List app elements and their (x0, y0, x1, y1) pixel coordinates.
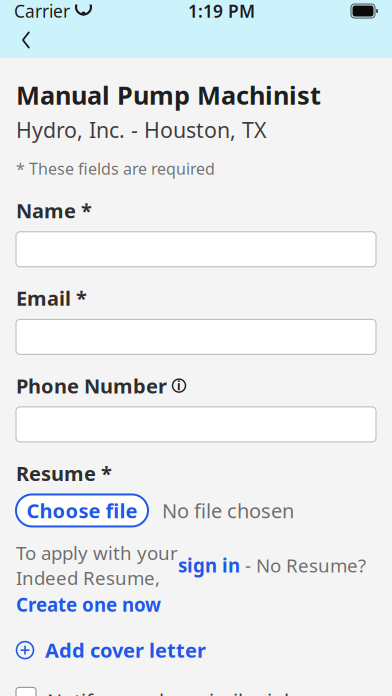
staticText: Create one now (16, 592, 161, 617)
staticText: Email * (16, 285, 87, 311)
staticText: Resume * (16, 460, 112, 486)
staticText: Hydro, Inc. - Houston, TX (16, 116, 267, 144)
staticText: Name * (16, 197, 92, 224)
staticText: * These fields are required (16, 158, 215, 179)
staticText: Manual Pump Machinist (16, 78, 321, 112)
staticText: - No Resume? (240, 553, 366, 578)
button[interactable]: sign in (178, 553, 240, 578)
staticText: No file chosen (162, 497, 294, 524)
button[interactable]: Create one now (16, 592, 161, 617)
staticText: Add cover letter (45, 637, 206, 663)
staticText: i (177, 378, 181, 394)
button[interactable]: Notify me when similar jobs are availabl… (16, 687, 376, 696)
button[interactable]: Back (4, 22, 48, 58)
staticText: Phone Number (16, 372, 167, 399)
staticText: 1:19 PM (188, 0, 255, 22)
staticText: Notify me when similar jobs are availabl… (47, 687, 341, 696)
staticText: sign in (178, 553, 240, 578)
staticText: Carrier (14, 0, 70, 22)
staticText: To apply with your Indeed Resume, (16, 540, 178, 590)
button[interactable]: Add cover letter (16, 637, 376, 663)
staticText: Choose file (26, 497, 137, 524)
button[interactable]: Choose file (16, 494, 148, 526)
